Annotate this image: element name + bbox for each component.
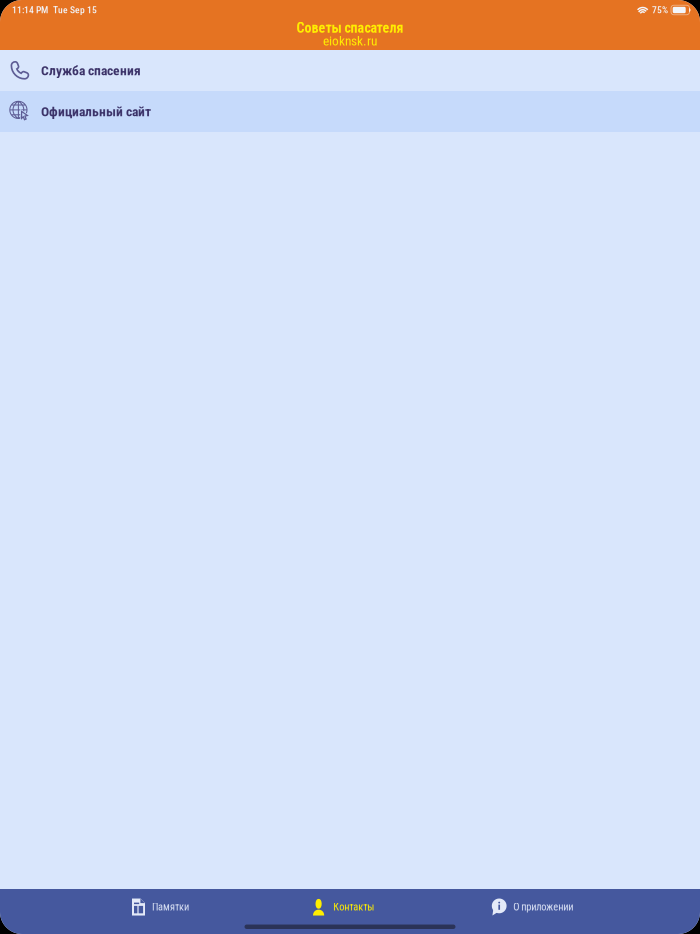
button[interactable]: О приложении <box>491 889 573 925</box>
staticText: Контакты <box>333 901 374 913</box>
button[interactable]: Официальный сайт <box>0 91 700 132</box>
staticText: Памятки <box>152 901 189 913</box>
staticText: О приложении <box>513 901 573 913</box>
staticText: eioknsk.ru <box>323 33 377 49</box>
staticText: Советы спасателя <box>296 20 403 36</box>
staticText: Tue Sep 15 <box>53 4 97 16</box>
button[interactable]: Памятки <box>132 889 189 925</box>
staticText: Служба спасения <box>41 62 141 78</box>
staticText: 11:14 PM <box>12 4 48 16</box>
button[interactable]: Контакты <box>313 889 374 925</box>
staticText: 75% <box>652 4 668 16</box>
staticText: Официальный сайт <box>41 103 151 119</box>
button[interactable]: Служба спасения <box>0 50 700 91</box>
